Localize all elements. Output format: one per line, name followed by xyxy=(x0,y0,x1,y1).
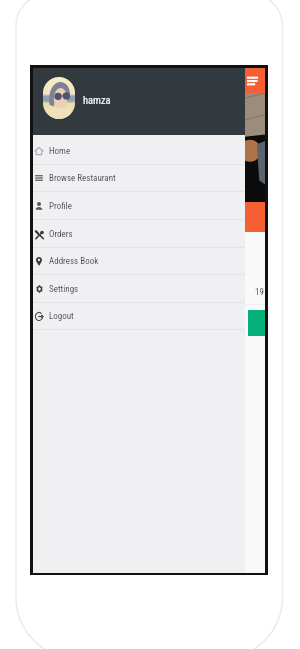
button[interactable]: Open navigation drawer xyxy=(240,68,265,93)
button[interactable]: Settings xyxy=(33,275,245,303)
button[interactable]: Orders xyxy=(33,220,245,248)
button[interactable]: Logout xyxy=(33,302,245,330)
staticText: Settings xyxy=(49,284,79,295)
staticText: Profile xyxy=(49,201,72,212)
staticText: hamza xyxy=(83,94,111,106)
button[interactable]: Profile xyxy=(33,192,245,220)
staticText: Browse Restaurant xyxy=(49,173,116,184)
staticText: Home xyxy=(49,146,71,157)
button[interactable]: Address Book xyxy=(33,247,245,275)
button[interactable]: Browse Restaurant xyxy=(33,164,245,192)
staticText: 19 xyxy=(255,287,264,298)
staticText: Logout xyxy=(49,311,74,322)
button[interactable]: Home xyxy=(33,137,245,165)
staticText: Address Book xyxy=(49,256,99,267)
staticText: Orders xyxy=(49,229,73,240)
